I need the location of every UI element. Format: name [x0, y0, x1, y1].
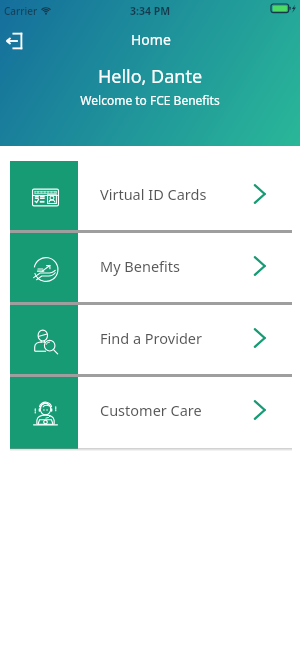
staticText: Home — [131, 30, 171, 49]
button[interactable]: Virtual ID Cards — [10, 161, 292, 233]
button[interactable]: Log out — [0, 20, 28, 58]
staticText: Virtual ID Cards — [100, 184, 253, 204]
staticText: Welcome to FCE Benefits — [0, 92, 300, 108]
staticText: Find a Provider — [100, 328, 253, 348]
staticText: Hello, Dante — [0, 64, 300, 89]
staticText: Carrier — [4, 4, 38, 18]
button[interactable]: Customer Care — [10, 377, 292, 449]
button[interactable]: Find a Provider — [10, 305, 292, 377]
staticText: My Benefits — [100, 256, 253, 276]
button[interactable]: My Benefits — [10, 233, 292, 305]
staticText: Customer Care — [100, 400, 253, 420]
staticText: 3:34 PM — [0, 4, 300, 18]
